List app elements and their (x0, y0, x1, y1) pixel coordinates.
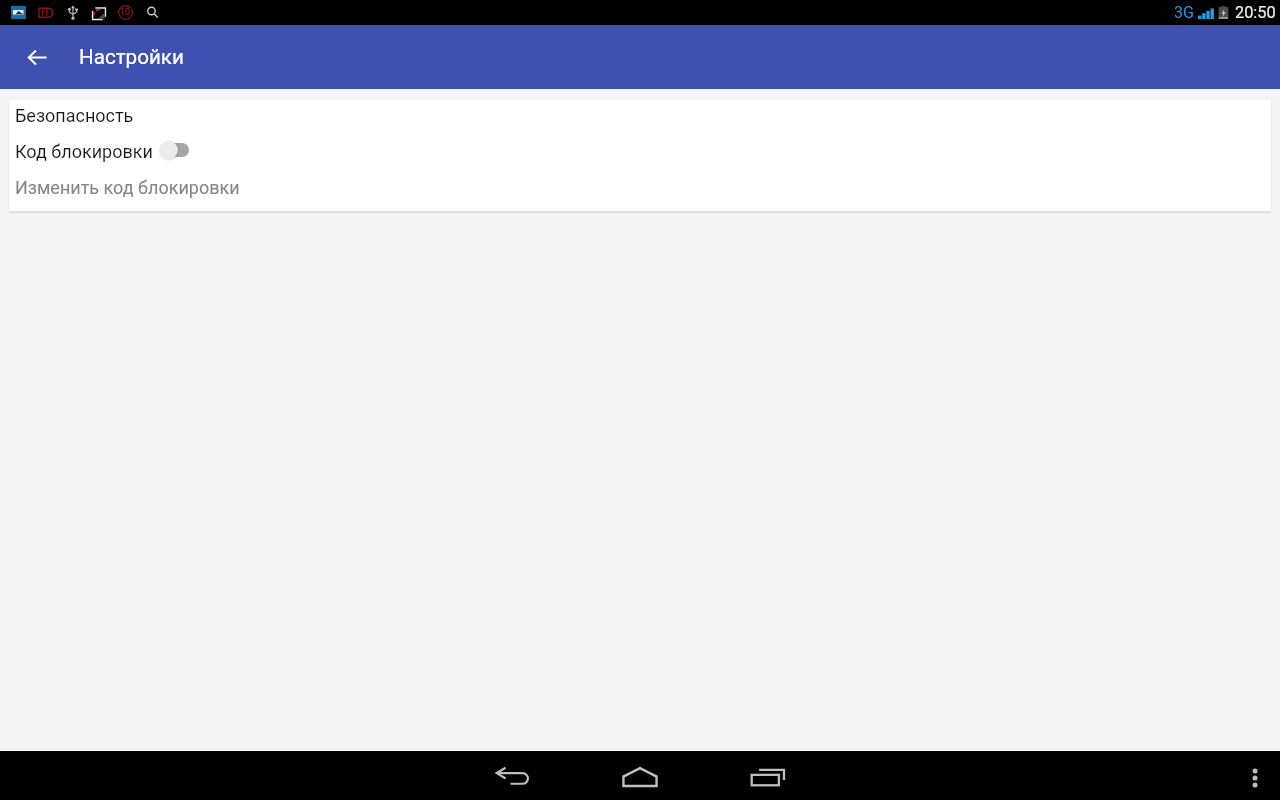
button[interactable]: Безопасность (10, 100, 1271, 133)
button[interactable]: More options (1230, 751, 1280, 800)
button[interactable]: Код блокировки (10, 133, 1271, 169)
staticText: Настройки (79, 45, 184, 69)
staticText: Безопасность (15, 105, 134, 126)
button[interactable]: Lock code toggle, off (160, 139, 190, 163)
button[interactable]: Recent apps (704, 751, 832, 800)
staticText: 20:50 (1235, 3, 1276, 22)
button[interactable]: Home (576, 751, 704, 800)
staticText: 3G (1174, 3, 1194, 22)
staticText: Изменить код блокировки (15, 177, 240, 198)
button[interactable]: Back (16, 36, 58, 78)
staticText: 10 (120, 7, 131, 18)
button[interactable]: Изменить код блокировки (10, 169, 1271, 205)
button[interactable]: Back (448, 751, 576, 800)
staticText: Код блокировки (15, 141, 153, 162)
